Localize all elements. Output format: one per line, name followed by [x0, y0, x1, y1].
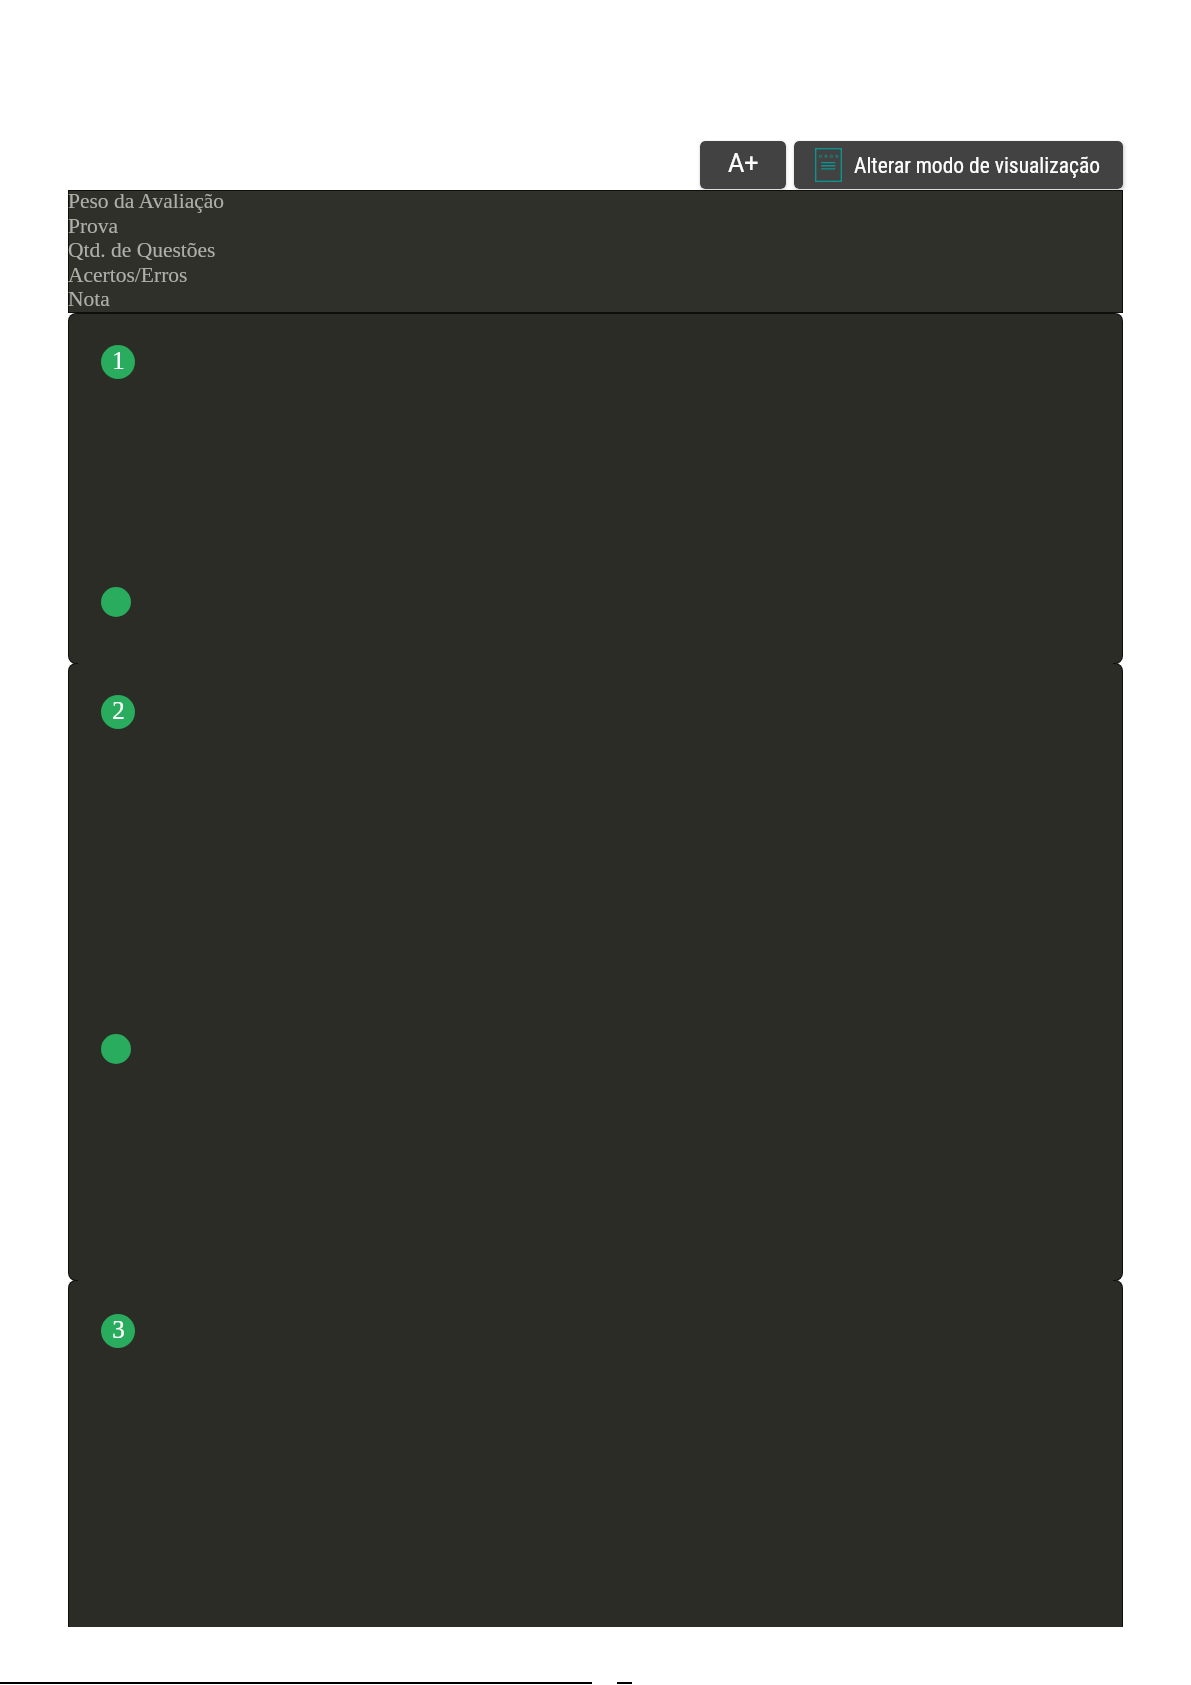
- button[interactable]: 1: [69, 314, 1122, 663]
- staticText: Qtd. de Questões: [68, 238, 216, 262]
- staticText: Peso da Avaliação: [68, 190, 225, 213]
- other: Alterar modo de visualização: [815, 148, 842, 182]
- staticText: Prova: [68, 214, 119, 238]
- staticText: Acertos/Erros: [68, 263, 188, 287]
- staticText: 1: [112, 347, 125, 375]
- staticText: 3: [112, 1316, 125, 1344]
- staticText: Alterar modo de visualização: [854, 153, 1100, 178]
- staticText: Nota: [68, 287, 110, 311]
- button[interactable]: Alterar modo de visualização: [794, 141, 1123, 189]
- button[interactable]: 2: [69, 664, 1122, 1280]
- button[interactable]: A+: [700, 141, 786, 189]
- staticText: 2: [112, 697, 125, 725]
- button[interactable]: 3: [69, 1281, 1122, 1627]
- staticText: A+: [728, 149, 759, 178]
